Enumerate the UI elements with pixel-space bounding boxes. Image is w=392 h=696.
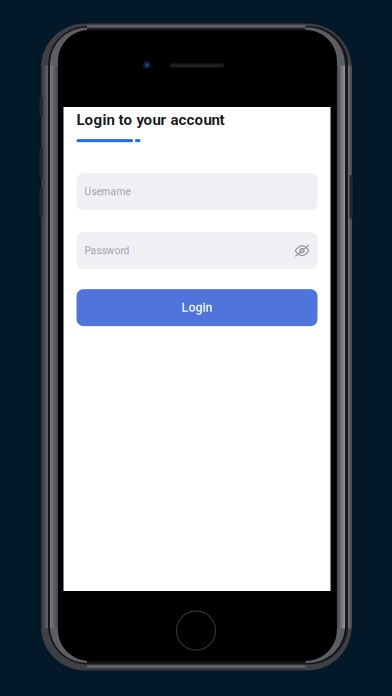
staticText: Login: [181, 300, 212, 315]
button[interactable]: Login: [76, 289, 317, 326]
staticText: Password: [84, 245, 129, 257]
button[interactable]: Username: [76, 173, 317, 210]
button[interactable]: Password: [76, 232, 317, 269]
staticText: Username: [84, 186, 130, 198]
staticText: Login to your account: [76, 111, 224, 129]
